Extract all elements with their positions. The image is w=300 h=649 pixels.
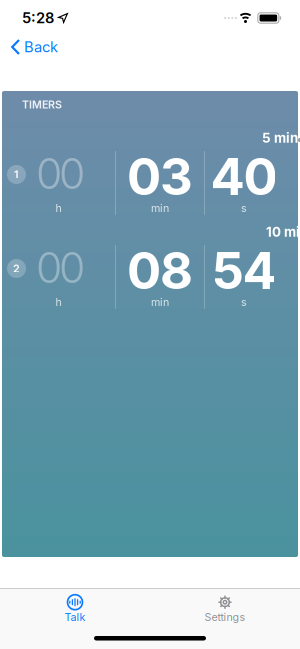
staticText: 2 <box>13 262 20 275</box>
button[interactable]: 10 min <box>256 224 298 240</box>
staticText: 54 <box>212 241 276 300</box>
staticText: h <box>55 202 61 214</box>
staticText: 5:28 <box>22 9 54 27</box>
staticText: 10 min <box>266 224 300 240</box>
staticText: min <box>151 202 169 214</box>
staticText: 00 <box>36 242 85 293</box>
staticText: h <box>55 296 61 308</box>
staticText: Back <box>24 38 58 56</box>
button[interactable]: Talk <box>0 595 150 622</box>
staticText: min <box>151 296 169 308</box>
staticText: 1 <box>14 168 19 181</box>
staticText: s <box>241 202 247 214</box>
staticText: TIMERS <box>22 98 62 111</box>
staticText: Talk <box>64 611 85 623</box>
button[interactable]: Back <box>0 33 58 61</box>
staticText: Settings <box>204 611 245 623</box>
staticText: 00 <box>36 148 85 199</box>
staticText: 5 min <box>262 130 298 146</box>
staticText: s <box>241 296 247 308</box>
button[interactable]: 5 min <box>262 130 298 146</box>
staticText: 40 <box>211 147 277 206</box>
staticText: 08 <box>127 241 193 300</box>
button[interactable]: Settings <box>150 595 300 622</box>
staticText: 03 <box>127 147 193 206</box>
